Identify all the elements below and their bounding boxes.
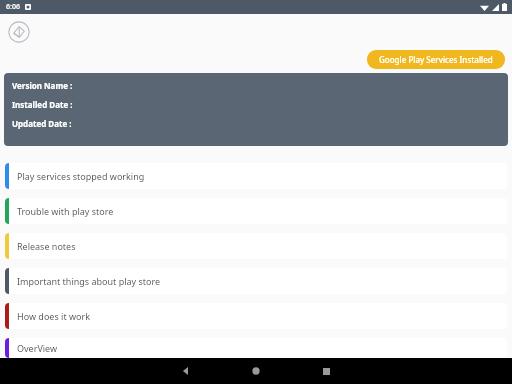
button[interactable]: How does it work: [5, 303, 507, 329]
button[interactable]: Version Name :: [4, 73, 508, 146]
staticText: Play services stopped working: [17, 170, 145, 182]
staticText: Trouble with play store: [17, 205, 114, 217]
button[interactable]: Trouble with play store: [5, 198, 507, 224]
staticText: Updated Date :: [12, 118, 72, 129]
button[interactable]: Play services stopped working: [5, 163, 507, 189]
button[interactable]: Recent apps: [304, 358, 348, 384]
staticText: Version Name :: [12, 80, 73, 91]
button[interactable]: Important things about play store: [5, 268, 507, 294]
staticText: Installed Date :: [12, 99, 73, 110]
staticText: OverView: [17, 342, 58, 354]
staticText: How does it work: [17, 310, 91, 322]
button[interactable]: Google Play Services Installed: [367, 50, 505, 69]
button[interactable]: Back: [164, 358, 208, 384]
button[interactable]: App logo: [6, 19, 32, 45]
staticText: Google Play Services Installed: [379, 54, 493, 65]
staticText: Release notes: [17, 240, 76, 252]
button[interactable]: OverView: [5, 338, 507, 358]
button[interactable]: Release notes: [5, 233, 507, 259]
staticText: Important things about play store: [17, 275, 161, 287]
staticText: 6:06: [6, 2, 20, 12]
button[interactable]: Home: [234, 358, 278, 384]
